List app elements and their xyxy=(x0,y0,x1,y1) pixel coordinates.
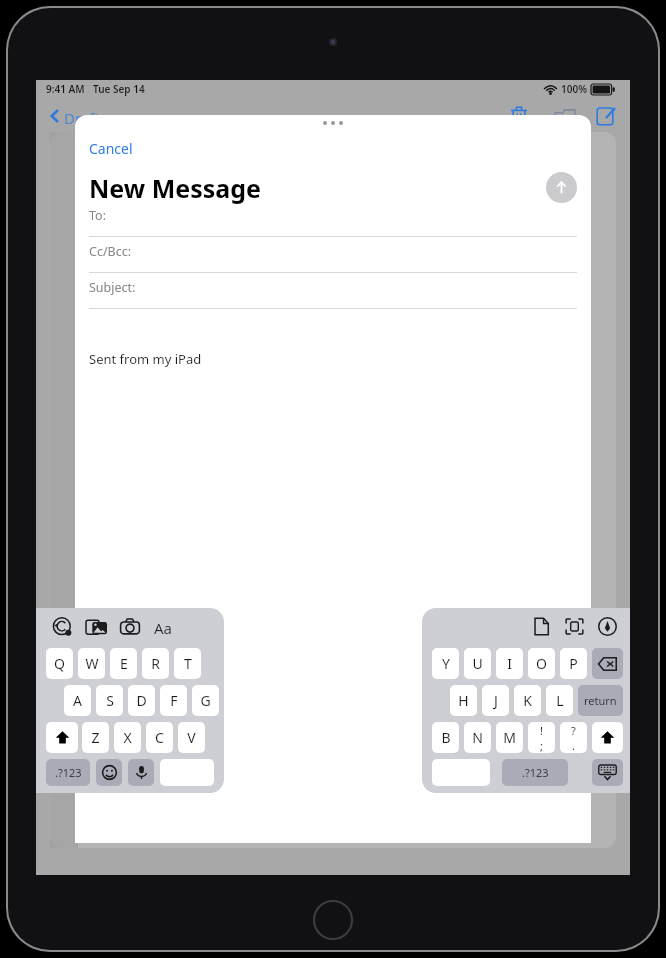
staticText: D xyxy=(136,691,147,710)
staticText: Z xyxy=(91,728,100,747)
button[interactable]: Markup xyxy=(598,617,617,636)
staticText: A xyxy=(73,691,82,710)
staticText: 9:41 AM xyxy=(46,82,85,96)
staticText: N xyxy=(472,728,483,747)
staticText: P xyxy=(569,654,578,673)
button[interactable]: Space xyxy=(160,759,214,786)
staticText: Cancel xyxy=(89,139,133,158)
button[interactable]: L xyxy=(546,685,573,716)
staticText: . xyxy=(572,738,575,753)
button[interactable]: M xyxy=(496,722,523,753)
button[interactable]: Cc/Bcc: xyxy=(75,237,591,273)
staticText: G xyxy=(200,691,211,710)
button[interactable]: To: xyxy=(75,201,591,237)
button[interactable]: O xyxy=(528,648,555,679)
button[interactable]: H xyxy=(450,685,477,716)
staticText: Cc/Bcc: xyxy=(89,243,132,260)
staticText: return xyxy=(584,693,617,708)
staticText: Y xyxy=(442,654,450,673)
button[interactable]: Camera xyxy=(120,618,140,636)
staticText: ; xyxy=(540,738,543,753)
button[interactable]: Shift xyxy=(592,722,623,753)
button[interactable]: return xyxy=(578,685,623,716)
staticText: V xyxy=(187,728,196,747)
staticText: New Message xyxy=(89,171,261,205)
staticText: ? xyxy=(571,723,576,738)
button[interactable]: ! xyxy=(528,722,555,753)
staticText: J xyxy=(494,691,498,710)
staticText: E xyxy=(120,654,128,673)
staticText: M xyxy=(503,728,516,747)
button[interactable]: Emoji xyxy=(96,759,122,786)
staticText: U xyxy=(472,654,483,673)
staticText: F xyxy=(170,691,178,710)
button[interactable]: .?123 xyxy=(502,759,568,786)
staticText: I xyxy=(507,654,512,673)
button[interactable]: I xyxy=(496,648,523,679)
button[interactable]: Shift xyxy=(46,722,78,753)
button[interactable]: Space xyxy=(432,759,490,786)
staticText: H xyxy=(458,691,469,710)
button[interactable]: Dictate xyxy=(128,759,154,786)
staticText: .?123 xyxy=(522,765,549,780)
button[interactable]: Subject: xyxy=(75,273,591,309)
button[interactable]: P xyxy=(560,648,587,679)
button[interactable]: E xyxy=(110,648,137,679)
staticText: 100% xyxy=(561,82,587,96)
staticText: Drafts xyxy=(64,108,108,128)
staticText: C xyxy=(155,728,164,747)
button[interactable]: V xyxy=(178,722,205,753)
button[interactable]: X xyxy=(114,722,141,753)
button[interactable]: Photos xyxy=(86,618,107,636)
staticText: R xyxy=(151,654,160,673)
staticText: X xyxy=(123,728,132,747)
button[interactable]: D xyxy=(128,685,155,716)
staticText: Tue Sep 14 xyxy=(93,82,145,96)
staticText: T xyxy=(184,654,192,673)
button[interactable]: N xyxy=(464,722,491,753)
button[interactable]: .?123 xyxy=(46,759,90,786)
button[interactable]: Delete xyxy=(592,648,623,679)
button[interactable]: G xyxy=(192,685,219,716)
button[interactable]: J xyxy=(482,685,509,716)
button[interactable]: ? xyxy=(560,722,587,753)
button[interactable]: S xyxy=(96,685,123,716)
staticText: Aa xyxy=(154,618,173,638)
button[interactable]: W xyxy=(78,648,105,679)
button[interactable]: Attach document xyxy=(533,617,550,636)
button[interactable]: Hide keyboard xyxy=(592,759,623,786)
button[interactable]: K xyxy=(514,685,541,716)
staticText: Q xyxy=(54,654,65,673)
staticText: B xyxy=(441,728,451,747)
staticText: Sent from my iPad xyxy=(89,350,202,368)
button[interactable]: Aa xyxy=(154,618,173,638)
staticText: L xyxy=(556,691,564,710)
button[interactable]: Scan document xyxy=(565,617,584,636)
button[interactable]: Y xyxy=(432,648,459,679)
button[interactable]: Z xyxy=(82,722,109,753)
staticText: To: xyxy=(89,207,106,224)
staticText: S xyxy=(106,691,114,710)
staticText: O xyxy=(536,654,547,673)
button[interactable]: B xyxy=(432,722,459,753)
staticText: .?123 xyxy=(55,765,82,780)
staticText: K xyxy=(523,691,532,710)
button[interactable]: Undo xyxy=(53,617,73,637)
button[interactable]: Q xyxy=(46,648,73,679)
button[interactable]: U xyxy=(464,648,491,679)
button[interactable]: C xyxy=(146,722,173,753)
button[interactable]: T xyxy=(174,648,201,679)
button[interactable]: Cancel xyxy=(89,139,133,158)
button[interactable]: R xyxy=(142,648,169,679)
button[interactable]: A xyxy=(64,685,91,716)
button[interactable]: Send xyxy=(546,172,577,203)
staticText: ! xyxy=(540,723,543,738)
staticText: W xyxy=(85,654,99,673)
staticText: Subject: xyxy=(89,279,136,296)
button[interactable]: F xyxy=(160,685,187,716)
